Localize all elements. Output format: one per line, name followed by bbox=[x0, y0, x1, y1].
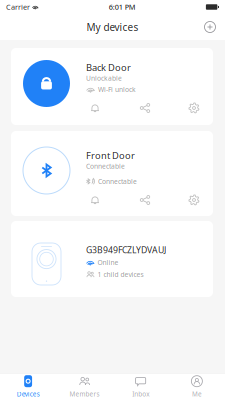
button[interactable]: Settings bbox=[176, 100, 212, 115]
button[interactable]: G3B949FCZLYDVAUJ bbox=[11, 221, 213, 297]
button[interactable]: Front Door bbox=[11, 131, 213, 216]
button[interactable]: Settings bbox=[176, 192, 212, 207]
button[interactable]: Devices bbox=[0, 371, 56, 400]
staticText: Front Door bbox=[86, 149, 135, 162]
button[interactable]: Notifications bbox=[77, 100, 113, 115]
button[interactable]: Me bbox=[169, 371, 225, 400]
staticText: Wi-Fi unlock bbox=[98, 85, 136, 94]
staticText: Devices bbox=[17, 390, 40, 398]
staticText: Unlockable bbox=[86, 74, 122, 83]
staticText: My devices bbox=[86, 20, 138, 34]
staticText: Connectable bbox=[86, 162, 125, 171]
button[interactable]: Inbox bbox=[112, 371, 169, 400]
button[interactable]: Members bbox=[56, 371, 112, 400]
staticText: Members bbox=[69, 390, 99, 398]
staticText: Inbox bbox=[132, 390, 149, 398]
staticText: G3B949FCZLYDVAUJ bbox=[86, 244, 166, 256]
button[interactable]: Add device bbox=[199, 16, 221, 38]
button[interactable]: Share bbox=[127, 192, 163, 207]
button[interactable]: Back Door bbox=[11, 48, 213, 125]
staticText: Me bbox=[192, 390, 202, 398]
button[interactable]: Share bbox=[127, 100, 163, 115]
button[interactable]: Notifications bbox=[77, 192, 113, 207]
staticText: Connectable bbox=[98, 177, 137, 186]
staticText: Carrier bbox=[6, 2, 30, 12]
staticText: Online bbox=[97, 258, 118, 267]
staticText: 1 child devices bbox=[97, 270, 143, 279]
staticText: 6:01 PM bbox=[109, 2, 136, 12]
staticText: Back Door bbox=[86, 61, 131, 74]
